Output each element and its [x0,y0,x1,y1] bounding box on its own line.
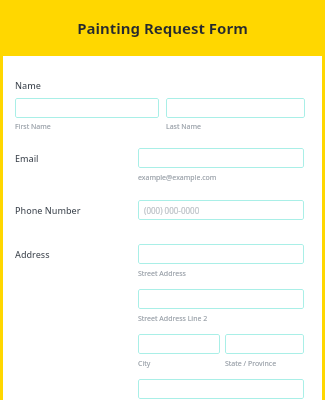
staticText: example@example.com [138,173,217,183]
button[interactable] [15,98,159,118]
staticText: Street Address Line 2 [138,314,208,324]
button[interactable] [166,98,305,118]
button[interactable] [138,244,304,264]
staticText: Phone Number [15,204,81,216]
staticText: Painting Request Form [77,18,248,38]
staticText: Street Address [138,269,186,279]
staticText: Last Name [166,122,202,132]
button[interactable] [138,379,304,399]
staticText: Email [15,152,39,164]
button[interactable] [138,334,220,354]
button[interactable]: (000) 000-0000 [138,200,304,220]
staticText: Address [15,248,50,260]
button[interactable] [225,334,304,354]
button[interactable] [138,148,304,168]
staticText: State / Province [225,359,277,369]
staticText: Name [15,79,41,91]
staticText: (000) 000-0000 [144,205,200,216]
staticText: First Name [15,122,51,132]
staticText: City [138,359,151,369]
button[interactable] [138,289,304,309]
